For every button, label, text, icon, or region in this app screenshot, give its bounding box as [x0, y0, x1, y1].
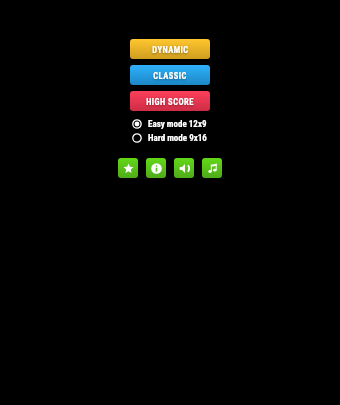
button[interactable]: DYNAMIC [130, 39, 210, 59]
button[interactable]: Easy mode 12x9 [132, 117, 207, 130]
button[interactable]: Sound [174, 158, 194, 178]
staticText: DYNAMIC [152, 45, 189, 55]
staticText: Hard mode 9x16 [148, 133, 207, 144]
button[interactable]: HIGH SCORE [130, 91, 210, 111]
button[interactable]: CLASSIC [130, 65, 210, 85]
staticText: HIGH SCORE [146, 97, 194, 107]
button[interactable]: Music [202, 158, 222, 178]
staticText: Easy mode 12x9 [148, 119, 207, 130]
button[interactable]: Info [146, 158, 166, 178]
button[interactable]: Hard mode 9x16 [132, 131, 207, 144]
button[interactable]: Rate this app [118, 158, 138, 178]
staticText: CLASSIC [153, 71, 187, 81]
